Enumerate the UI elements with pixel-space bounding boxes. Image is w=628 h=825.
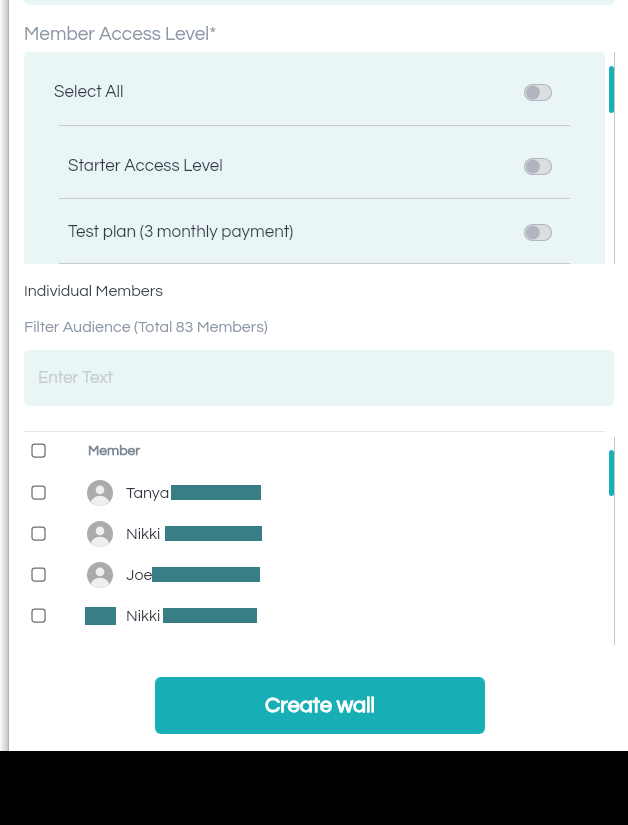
button[interactable]: Toggle option (524, 84, 552, 101)
staticText: Nikki (126, 526, 161, 542)
staticText: Enter Text (38, 369, 113, 387)
staticText: Test plan (3 monthly payment) (68, 223, 294, 241)
button[interactable]: Select row (28, 523, 49, 544)
staticText: Nikki (126, 608, 161, 624)
staticText: Member Access Level* (24, 24, 217, 44)
button[interactable]: Select row (0, 519, 628, 548)
button[interactable]: Toggle option (524, 224, 552, 241)
staticText: Tanya (126, 485, 170, 501)
button[interactable]: Create wall (155, 677, 485, 734)
button[interactable]: Select row (28, 482, 49, 503)
staticText: Starter Access Level (68, 157, 223, 175)
button[interactable]: Toggle option (524, 158, 552, 175)
button[interactable]: Select row (0, 601, 628, 630)
button[interactable]: Test plan (3 monthly payment) (24, 212, 605, 252)
button[interactable]: Select row (28, 605, 49, 626)
staticText: Select All (54, 83, 124, 101)
button[interactable]: Enter Text (24, 350, 614, 406)
staticText: Joe (126, 567, 153, 583)
button[interactable]: Select All (24, 72, 605, 112)
button[interactable]: Select row (0, 560, 628, 589)
staticText: Filter Audience (Total 83 Members) (24, 319, 268, 335)
button[interactable]: Starter Access Level (24, 146, 605, 186)
button[interactable]: Select row (0, 478, 628, 507)
button[interactable]: Select row (0, 437, 628, 464)
button[interactable]: Select row (28, 564, 49, 585)
button[interactable]: Select row (28, 440, 49, 461)
staticText: Individual Members (24, 283, 163, 299)
staticText: Member (88, 444, 141, 458)
staticText: Create wall (265, 694, 376, 717)
